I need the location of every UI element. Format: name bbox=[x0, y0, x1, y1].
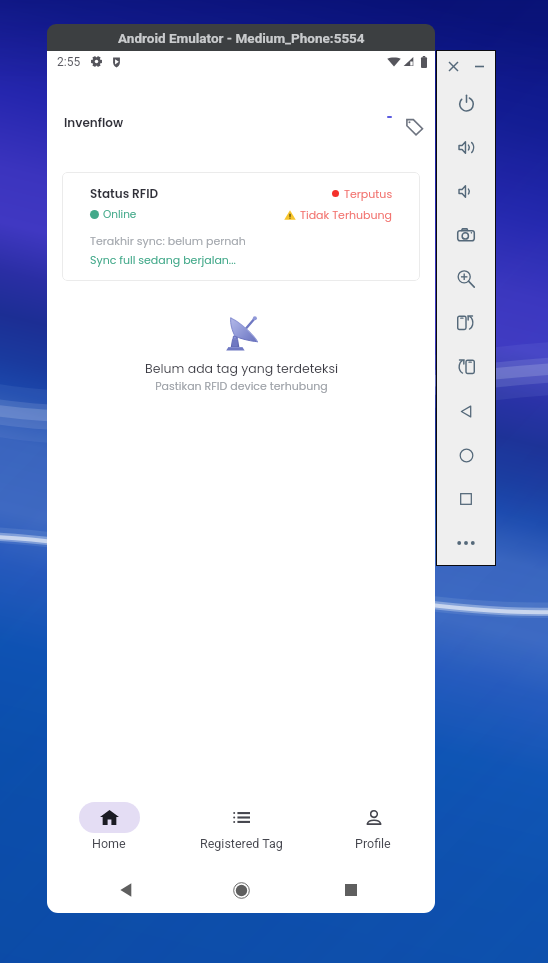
button[interactable]: Screenshot bbox=[437, 213, 495, 257]
staticText: Home bbox=[92, 836, 126, 851]
button[interactable]: Registered Tag bbox=[175, 790, 307, 851]
button[interactable]: Power bbox=[437, 81, 495, 125]
staticText: Terputus bbox=[344, 186, 393, 201]
staticText: Android Emulator - Medium_Phone:5554 bbox=[118, 30, 365, 46]
staticText: Terakhir sync: belum pernah bbox=[90, 233, 246, 248]
staticText: Online bbox=[103, 207, 137, 222]
button[interactable]: Home bbox=[47, 790, 175, 851]
button[interactable]: Minimize bbox=[468, 55, 490, 77]
button[interactable]: Close bbox=[442, 55, 464, 77]
staticText: Sync full sedang berjalan... bbox=[90, 252, 236, 267]
button[interactable]: Volume up bbox=[437, 125, 495, 169]
button[interactable]: Back bbox=[437, 389, 495, 433]
button[interactable]: Rotate left bbox=[437, 345, 495, 389]
button[interactable]: Recents bbox=[328, 867, 374, 913]
button[interactable]: Status RFID bbox=[62, 172, 420, 281]
button[interactable]: Back bbox=[103, 867, 149, 913]
staticText: Profile bbox=[355, 836, 391, 851]
button[interactable]: Home bbox=[437, 433, 495, 477]
button[interactable]: Overview bbox=[437, 477, 495, 521]
staticText: Status RFID bbox=[90, 185, 159, 202]
staticText: Tidak Terhubung bbox=[300, 207, 393, 222]
button[interactable]: Rotate right bbox=[437, 301, 495, 345]
button[interactable]: Home bbox=[218, 867, 264, 913]
staticText: Registered Tag bbox=[200, 836, 283, 851]
staticText: Invenflow bbox=[64, 114, 124, 131]
staticText: Belum ada tag yang terdeteksi bbox=[145, 360, 338, 377]
button[interactable]: Volume down bbox=[437, 169, 495, 213]
button[interactable]: Tags bbox=[396, 108, 432, 144]
button[interactable]: More bbox=[437, 521, 495, 565]
button[interactable]: Profile bbox=[307, 790, 435, 851]
button[interactable]: Zoom bbox=[437, 257, 495, 301]
staticText: 2:55 bbox=[57, 55, 81, 69]
staticText: Pastikan RFID device terhubung bbox=[155, 378, 328, 393]
